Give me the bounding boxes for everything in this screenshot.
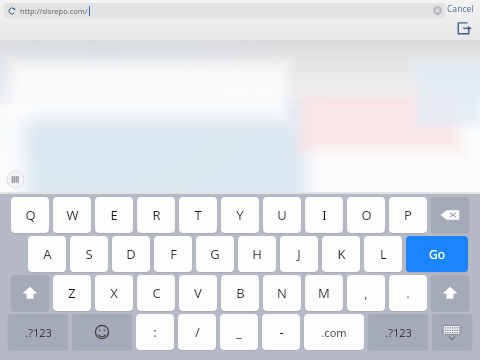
button[interactable]: - (262, 314, 300, 350)
button[interactable]: Z (53, 275, 91, 311)
staticText: R (152, 206, 161, 224)
staticText: / (195, 323, 200, 341)
staticText: _ (236, 323, 242, 341)
staticText: F (170, 245, 177, 263)
staticText: H (252, 245, 262, 263)
staticText: . (406, 284, 410, 302)
button[interactable]: S (70, 236, 108, 272)
staticText: N (277, 284, 287, 302)
staticText: M (318, 284, 330, 302)
button[interactable]: N (263, 275, 301, 311)
button[interactable]: .?123 (368, 314, 428, 350)
button[interactable]: Q (11, 197, 49, 233)
staticText: K (337, 245, 346, 263)
staticText: .?123 (385, 325, 412, 340)
button[interactable]: R (137, 197, 175, 233)
button[interactable]: G (196, 236, 234, 272)
staticText: L (380, 245, 387, 263)
staticText: W (66, 206, 79, 224)
button[interactable]: Emoji (72, 314, 132, 350)
staticText: Z (68, 284, 76, 302)
staticText: B (236, 284, 245, 302)
button[interactable]: _ (220, 314, 258, 350)
staticText: Cancel (447, 3, 474, 15)
staticText: .com (321, 325, 347, 340)
staticText: D (126, 245, 136, 263)
button[interactable]: , (347, 275, 385, 311)
button[interactable]: I (305, 197, 343, 233)
staticText: http://slsrepo.com/ (20, 6, 88, 16)
button[interactable]: Open in new window (456, 20, 472, 36)
button[interactable]: Backspace (431, 197, 469, 233)
staticText: - (279, 323, 284, 341)
button[interactable]: : (136, 314, 174, 350)
staticText: Go (429, 246, 445, 262)
staticText: , (364, 284, 368, 302)
staticText: G (210, 245, 220, 263)
button[interactable]: Hide keyboard (432, 314, 472, 350)
button[interactable]: J (280, 236, 318, 272)
button[interactable]: .?123 (8, 314, 68, 350)
staticText: U (277, 206, 287, 224)
button[interactable]: L (364, 236, 402, 272)
staticText: V (194, 284, 202, 302)
button[interactable]: Shift (431, 275, 469, 311)
button[interactable]: http://slsrepo.com/ (4, 3, 446, 18)
staticText: : (153, 323, 157, 341)
staticText: I (322, 206, 327, 224)
button[interactable]: B (221, 275, 259, 311)
button[interactable]: U (263, 197, 301, 233)
button[interactable]: K (322, 236, 360, 272)
staticText: P (404, 206, 412, 224)
button[interactable]: P (389, 197, 427, 233)
button[interactable]: Go (406, 236, 468, 272)
button[interactable]: M (305, 275, 343, 311)
staticText: C (152, 284, 161, 302)
staticText: J (297, 245, 301, 263)
button[interactable]: Cancel (444, 1, 477, 17)
staticText: Q (25, 206, 36, 224)
button[interactable]: V (179, 275, 217, 311)
staticText: A (43, 245, 52, 263)
button[interactable]: O (347, 197, 385, 233)
button[interactable]: D (112, 236, 150, 272)
staticText: T (194, 206, 202, 224)
staticText: .?123 (25, 325, 52, 340)
button[interactable]: Page badge (7, 171, 24, 188)
button[interactable]: F (154, 236, 192, 272)
staticText: S (85, 245, 93, 263)
button[interactable]: A (28, 236, 66, 272)
button[interactable]: Y (221, 197, 259, 233)
button[interactable]: / (178, 314, 216, 350)
button[interactable]: W (53, 197, 91, 233)
button[interactable]: C (137, 275, 175, 311)
button[interactable]: H (238, 236, 276, 272)
staticText: X (110, 284, 118, 302)
button[interactable]: Shift (11, 275, 49, 311)
button[interactable]: .com (304, 314, 364, 350)
button[interactable]: X (95, 275, 133, 311)
button[interactable]: E (95, 197, 133, 233)
button[interactable]: T (179, 197, 217, 233)
button[interactable]: Clear text (433, 6, 442, 15)
button[interactable]: . (389, 275, 427, 311)
staticText: O (361, 206, 372, 224)
staticText: Y (236, 206, 244, 224)
staticText: E (110, 206, 118, 224)
